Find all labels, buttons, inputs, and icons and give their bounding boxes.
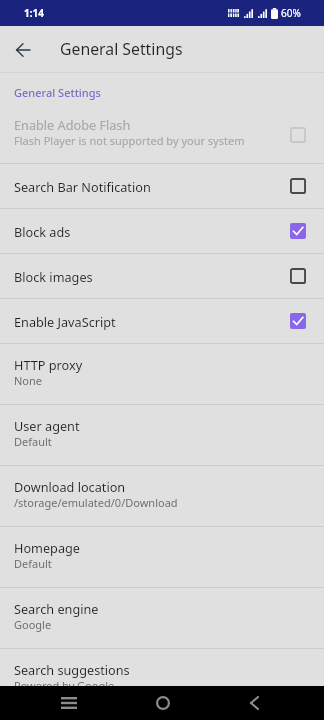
staticText: 60%: [281, 6, 301, 20]
button[interactable]: User agent: [0, 405, 324, 465]
staticText: Default: [14, 556, 52, 571]
button[interactable]: Download location: [0, 466, 324, 526]
staticText: 1:14: [24, 6, 44, 20]
staticText: Search engine: [14, 600, 99, 617]
staticText: Enable JavaScript: [14, 313, 290, 330]
button[interactable]: Search Bar Notification: [0, 164, 324, 208]
staticText: General Settings: [14, 85, 101, 100]
button[interactable]: HTTP proxy: [0, 344, 324, 404]
staticText: Homepage: [14, 539, 80, 556]
staticText: Enable Adobe Flash: [14, 116, 131, 133]
staticText: HTTP proxy: [14, 356, 83, 373]
button[interactable]: Enable Adobe Flash: [0, 106, 324, 163]
staticText: Block images: [14, 268, 290, 285]
staticText: Powered by Google: [14, 678, 115, 686]
staticText: Search suggestions: [14, 661, 130, 678]
staticText: General Settings: [60, 38, 183, 60]
staticText: None: [14, 373, 43, 388]
button[interactable]: Recent apps: [46, 686, 91, 720]
button[interactable]: Home: [140, 686, 185, 720]
button[interactable]: Back: [232, 686, 277, 720]
staticText: Search Bar Notification: [14, 178, 290, 195]
staticText: Google: [14, 617, 52, 632]
staticText: Flash Player is not supported by your sy…: [14, 133, 245, 148]
button[interactable]: Homepage: [0, 527, 324, 587]
button[interactable]: Search engine: [0, 588, 324, 648]
staticText: Default: [14, 434, 52, 449]
button[interactable]: Block images: [0, 254, 324, 298]
button[interactable]: Enable JavaScript: [0, 299, 324, 343]
staticText: /storage/emulated/0/Download: [14, 495, 178, 510]
button[interactable]: Block ads: [0, 209, 324, 253]
button[interactable]: Search suggestions: [0, 649, 324, 686]
staticText: Download location: [14, 478, 126, 495]
staticText: User agent: [14, 417, 80, 434]
button[interactable]: Back: [0, 26, 46, 72]
staticText: Block ads: [14, 223, 290, 240]
